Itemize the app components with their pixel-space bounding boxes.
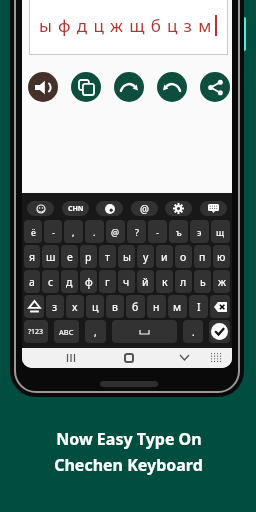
button[interactable] <box>157 72 187 102</box>
staticText: с <box>48 275 54 289</box>
button[interactable]: Ӏ <box>189 295 208 318</box>
button[interactable]: @ <box>131 201 158 216</box>
button[interactable]: з <box>46 295 64 318</box>
button[interactable] <box>28 72 58 102</box>
button[interactable]: ю <box>213 245 230 268</box>
staticText: в <box>112 300 118 314</box>
button[interactable]: ? <box>127 220 146 243</box>
button[interactable]: ф <box>80 270 97 293</box>
staticText: . <box>192 325 195 339</box>
staticText: м <box>173 300 182 314</box>
button[interactable]: ц <box>86 295 104 318</box>
button[interactable]: ь <box>194 270 211 293</box>
staticText: л <box>180 275 187 289</box>
staticText: ь <box>200 275 206 289</box>
staticText: т <box>105 250 110 264</box>
button[interactable]: ABC <box>54 320 79 343</box>
button[interactable]: ш <box>42 245 59 268</box>
staticText: Now Easy Type On <box>56 428 202 450</box>
staticText: ?123 <box>28 327 44 337</box>
staticText: я <box>29 250 36 264</box>
staticText: з <box>52 300 58 314</box>
button[interactable]: е <box>61 245 78 268</box>
staticText: - <box>156 226 159 238</box>
button[interactable]: ъ <box>169 220 188 243</box>
staticText: к <box>162 275 168 289</box>
button[interactable]: и <box>156 245 173 268</box>
staticText: э <box>197 226 202 238</box>
button[interactable] <box>165 201 192 216</box>
button[interactable]: м <box>168 295 187 318</box>
button[interactable]: к <box>156 270 173 293</box>
button[interactable]: ы ф д ц ж щ б ц з м <box>29 0 228 55</box>
staticText: ж <box>218 275 226 289</box>
button[interactable] <box>209 320 230 343</box>
staticText: ш <box>46 250 56 264</box>
button[interactable]: - <box>44 220 62 243</box>
button[interactable]: д <box>61 270 78 293</box>
button[interactable]: в <box>106 295 124 318</box>
button[interactable]: я <box>24 245 40 268</box>
button[interactable]: ё <box>24 220 42 243</box>
staticText: , <box>72 226 75 238</box>
staticText: @ <box>111 226 120 238</box>
button[interactable]: н <box>147 295 166 318</box>
button[interactable] <box>200 201 227 216</box>
button[interactable] <box>96 201 123 216</box>
staticText: ABC <box>59 327 74 337</box>
button[interactable]: т <box>99 245 116 268</box>
button[interactable] <box>210 295 230 318</box>
button[interactable]: а <box>24 270 40 293</box>
button[interactable]: , <box>64 220 83 243</box>
button[interactable]: - <box>148 220 167 243</box>
button[interactable]: @ <box>106 220 125 243</box>
staticText: ъ <box>176 226 182 238</box>
staticText: б <box>132 300 139 314</box>
staticText: о <box>180 250 187 264</box>
button[interactable]: г <box>99 270 116 293</box>
button[interactable]: п <box>194 245 211 268</box>
button[interactable] <box>27 201 54 216</box>
button[interactable]: с <box>42 270 59 293</box>
button[interactable]: о <box>175 245 192 268</box>
button[interactable] <box>112 320 177 343</box>
button[interactable] <box>24 295 44 318</box>
button[interactable]: б <box>126 295 145 318</box>
staticText: ? <box>135 226 139 238</box>
staticText: ч <box>123 275 130 289</box>
staticText: а <box>29 275 35 289</box>
button[interactable]: , <box>85 320 106 343</box>
button[interactable]: щ <box>211 220 230 243</box>
button[interactable]: й <box>137 270 154 293</box>
staticText: ц <box>92 300 99 314</box>
staticText: @ <box>140 202 149 216</box>
button[interactable]: э <box>190 220 209 243</box>
button[interactable] <box>200 72 230 102</box>
staticText: ё <box>31 226 36 238</box>
staticText: ф <box>85 275 93 289</box>
staticText: ы ф д ц ж щ б ц з м <box>39 14 213 37</box>
button[interactable]: р <box>80 245 97 268</box>
button[interactable]: ы <box>118 245 135 268</box>
staticText: ы <box>123 250 131 264</box>
button[interactable]: л <box>175 270 192 293</box>
staticText: . <box>93 226 96 238</box>
button[interactable]: у <box>137 245 154 268</box>
button[interactable] <box>124 353 134 363</box>
button[interactable]: ж <box>213 270 230 293</box>
staticText: щ <box>216 226 225 238</box>
button[interactable]: х <box>66 295 84 318</box>
button[interactable]: . <box>85 220 104 243</box>
button[interactable]: CHN <box>62 201 89 216</box>
staticText: е <box>67 250 73 264</box>
staticText: CHN <box>68 204 84 214</box>
staticText: р <box>85 250 92 264</box>
button[interactable]: ч <box>118 270 135 293</box>
button[interactable]: . <box>183 320 203 343</box>
button[interactable] <box>114 72 144 102</box>
staticText: - <box>52 226 55 238</box>
staticText: Chechen Keyboard <box>54 454 203 476</box>
button[interactable] <box>71 72 101 102</box>
staticText: Ӏ <box>197 300 201 314</box>
button[interactable]: ?123 <box>24 320 48 343</box>
